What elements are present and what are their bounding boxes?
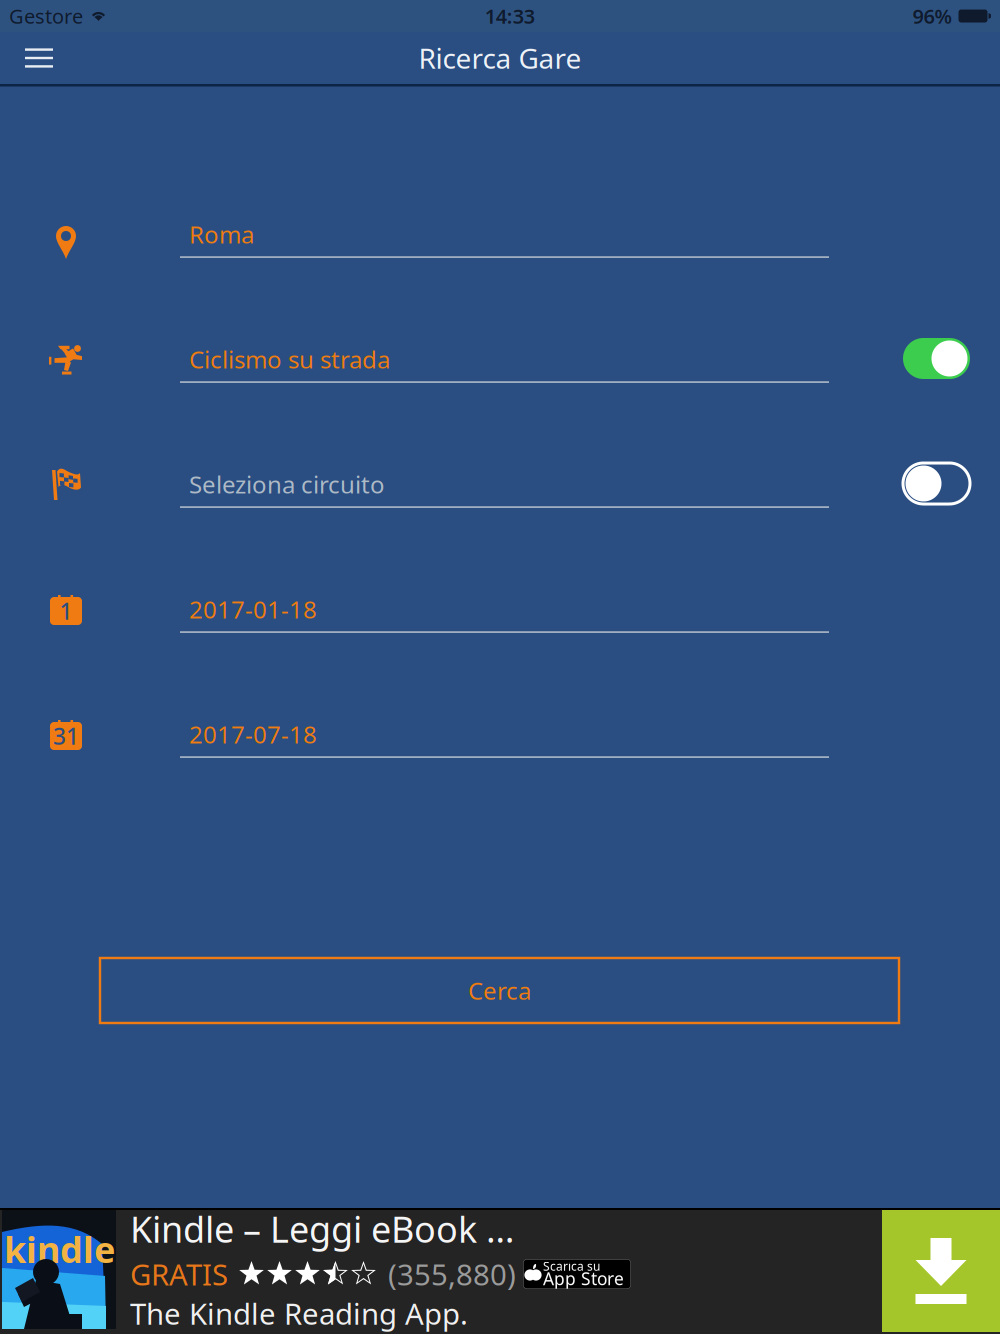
staticText: kindle: [4, 1225, 115, 1273]
button[interactable]: 2017-07-18: [180, 722, 829, 758]
staticText: Kindle – Leggi eBook …: [130, 1205, 514, 1253]
staticText: Gestore: [9, 3, 83, 29]
staticText: Ricerca Gare: [418, 39, 581, 77]
staticText: App Store: [543, 1267, 624, 1290]
staticText: 14:33: [485, 3, 535, 29]
staticText: Seleziona circuito: [189, 468, 385, 500]
staticText: 31: [53, 721, 79, 751]
button[interactable]: Cerca: [100, 958, 899, 1023]
staticText: Scarica su: [543, 1258, 600, 1274]
button[interactable]: Scarica: [882, 1210, 1000, 1332]
staticText: 2017-07-18: [189, 718, 317, 750]
staticText: 1: [59, 596, 72, 626]
staticText: GRATIS: [130, 1254, 228, 1293]
button[interactable]: Ciclismo su strada: [180, 347, 829, 383]
button[interactable]: Roma: [180, 222, 829, 258]
staticText: The Kindle Reading App.: [130, 1294, 468, 1333]
staticText: Cerca: [468, 975, 531, 1006]
staticText: 2017-01-18: [189, 593, 317, 625]
button[interactable]: Seleziona circuito disattivo: [903, 463, 970, 504]
staticText: 96%: [912, 3, 952, 29]
button[interactable]: Ciclismo su strada attivo: [903, 338, 970, 379]
button[interactable]: Menu: [11, 32, 67, 84]
button[interactable]: Seleziona circuito: [180, 472, 829, 508]
staticText: (355,880): [388, 1254, 516, 1293]
staticText: Roma: [189, 218, 254, 250]
staticText: Ciclismo su strada: [189, 343, 390, 375]
button[interactable]: 2017-01-18: [180, 597, 829, 633]
